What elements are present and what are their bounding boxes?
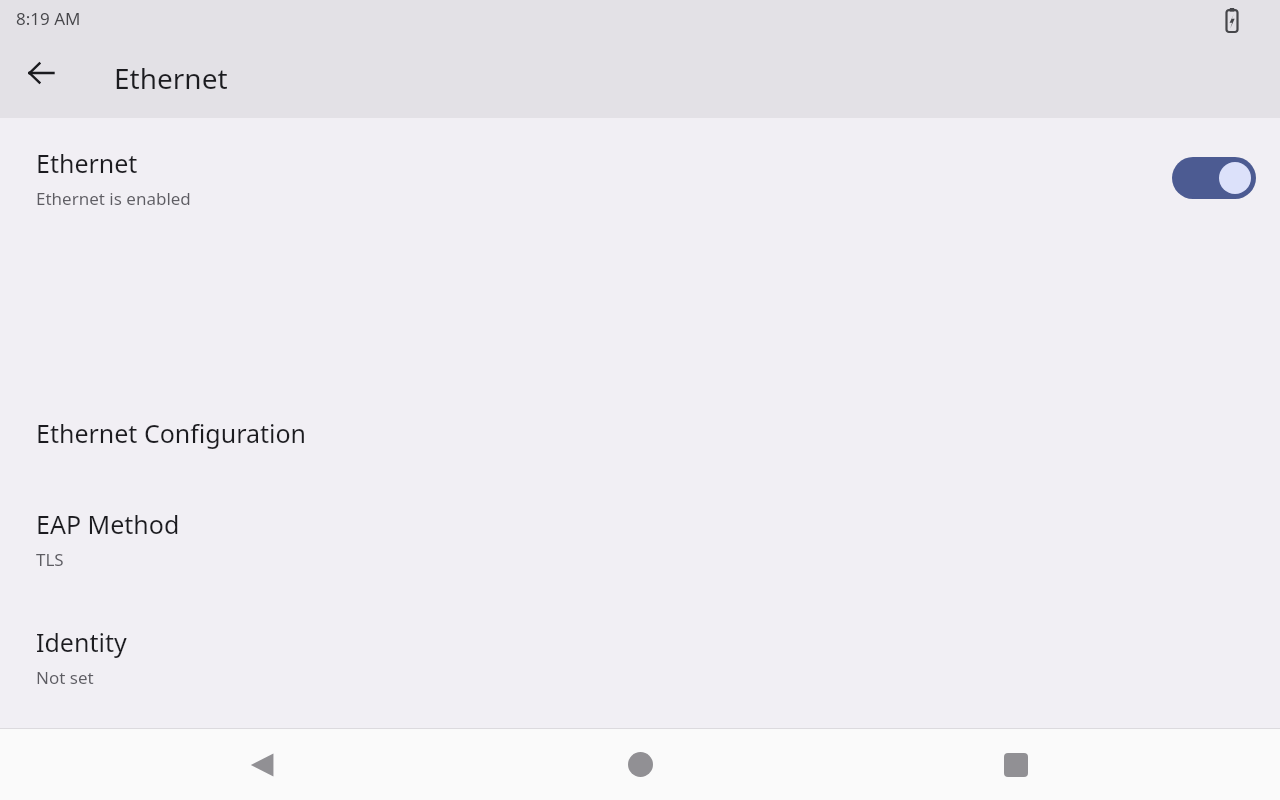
staticText: EAP Method [36,507,180,541]
button[interactable]: Back [214,729,310,800]
staticText: TLS [36,548,64,571]
button[interactable]: Ethernet Configuration [0,386,1280,480]
button[interactable]: Ethernet, on [1172,157,1256,199]
button[interactable]: Navigate up [17,49,65,97]
staticText: Ethernet Configuration [36,416,307,450]
button[interactable]: EAP Method [0,489,1280,599]
staticText: Ethernet [114,59,228,97]
button[interactable]: Identity [0,607,1280,717]
button[interactable]: Recent apps [968,729,1064,800]
staticText: Not set [36,666,94,689]
button[interactable]: Home [592,729,688,800]
staticText: Ethernet [36,146,138,180]
staticText: Ethernet is enabled [36,187,191,210]
staticText: Identity [36,625,127,659]
button[interactable]: Ethernet [0,118,1280,238]
staticText: 8:19 AM [16,7,81,30]
